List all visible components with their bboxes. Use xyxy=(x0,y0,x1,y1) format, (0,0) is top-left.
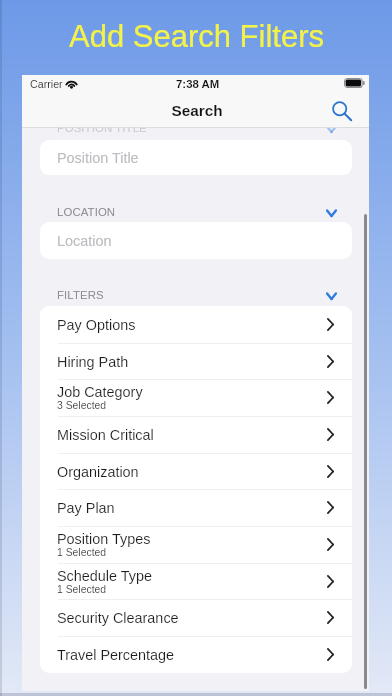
staticText: 1 Selected xyxy=(57,547,107,559)
staticText: Position Types xyxy=(57,531,151,547)
button[interactable]: POSITION TITLE xyxy=(22,120,369,137)
button[interactable]: LOCATION xyxy=(22,204,369,221)
button[interactable]: Hiring Path xyxy=(40,343,352,380)
staticText: 7:38 AM xyxy=(176,78,220,91)
button[interactable]: Schedule Type xyxy=(40,563,352,600)
button[interactable]: Security Clearance xyxy=(40,599,352,636)
staticText: Security Clearance xyxy=(57,610,179,626)
staticText: 1 Selected xyxy=(57,584,107,596)
button[interactable]: Location xyxy=(40,222,352,259)
button[interactable]: Pay Options xyxy=(40,306,352,343)
button[interactable]: Travel Percentage xyxy=(40,636,352,673)
staticText: Job Category xyxy=(57,384,143,400)
staticText: Schedule Type xyxy=(57,568,152,584)
staticText: FILTERS xyxy=(57,289,104,302)
staticText: Hiring Path xyxy=(57,354,129,370)
staticText: Organization xyxy=(57,464,139,480)
staticText: 3 Selected xyxy=(57,400,107,412)
button[interactable]: Job Category xyxy=(40,379,352,416)
button[interactable]: Pay Plan xyxy=(40,489,352,526)
button[interactable]: Position Title xyxy=(40,140,352,175)
staticText: Pay Options xyxy=(57,317,136,333)
staticText: LOCATION xyxy=(57,206,116,219)
staticText: Travel Percentage xyxy=(57,647,175,663)
staticText: Add Search Filters xyxy=(69,19,324,54)
staticText: Carrier xyxy=(30,78,63,90)
staticText: POSITION TITLE xyxy=(57,122,147,135)
staticText: Search xyxy=(171,102,223,119)
staticText: Mission Critical xyxy=(57,427,154,443)
staticText: Location xyxy=(57,233,112,249)
button[interactable]: Position Types xyxy=(40,526,352,563)
button[interactable]: Organization xyxy=(40,453,352,490)
button[interactable]: Mission Critical xyxy=(40,416,352,453)
button[interactable]: FILTERS xyxy=(22,287,369,304)
button[interactable]: Search xyxy=(331,101,355,125)
staticText: Position Title xyxy=(57,150,139,166)
staticText: Pay Plan xyxy=(57,500,115,516)
